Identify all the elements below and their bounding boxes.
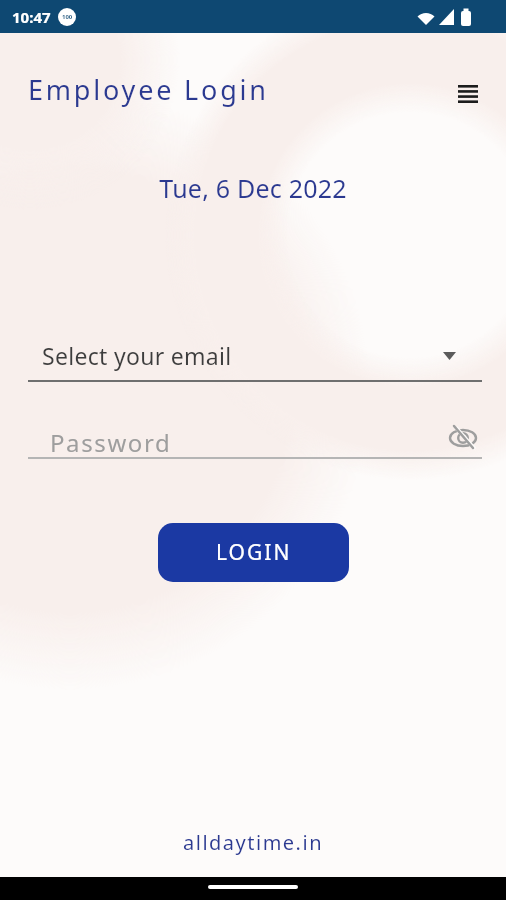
- staticText: 10:47: [12, 7, 51, 27]
- staticText: LOGIN: [216, 538, 292, 567]
- button[interactable]: Password: [28, 423, 482, 459]
- staticText: Tue, 6 Dec 2022: [0, 171, 506, 205]
- staticText: Password: [50, 426, 172, 459]
- button[interactable]: alldaytime.in: [0, 829, 506, 856]
- button[interactable]: Select your email: [28, 340, 482, 382]
- button[interactable]: [458, 85, 478, 103]
- staticText: Employee Login: [28, 71, 269, 108]
- staticText: 100: [62, 13, 73, 21]
- button[interactable]: LOGIN: [158, 523, 349, 582]
- staticText: Select your email: [42, 340, 232, 371]
